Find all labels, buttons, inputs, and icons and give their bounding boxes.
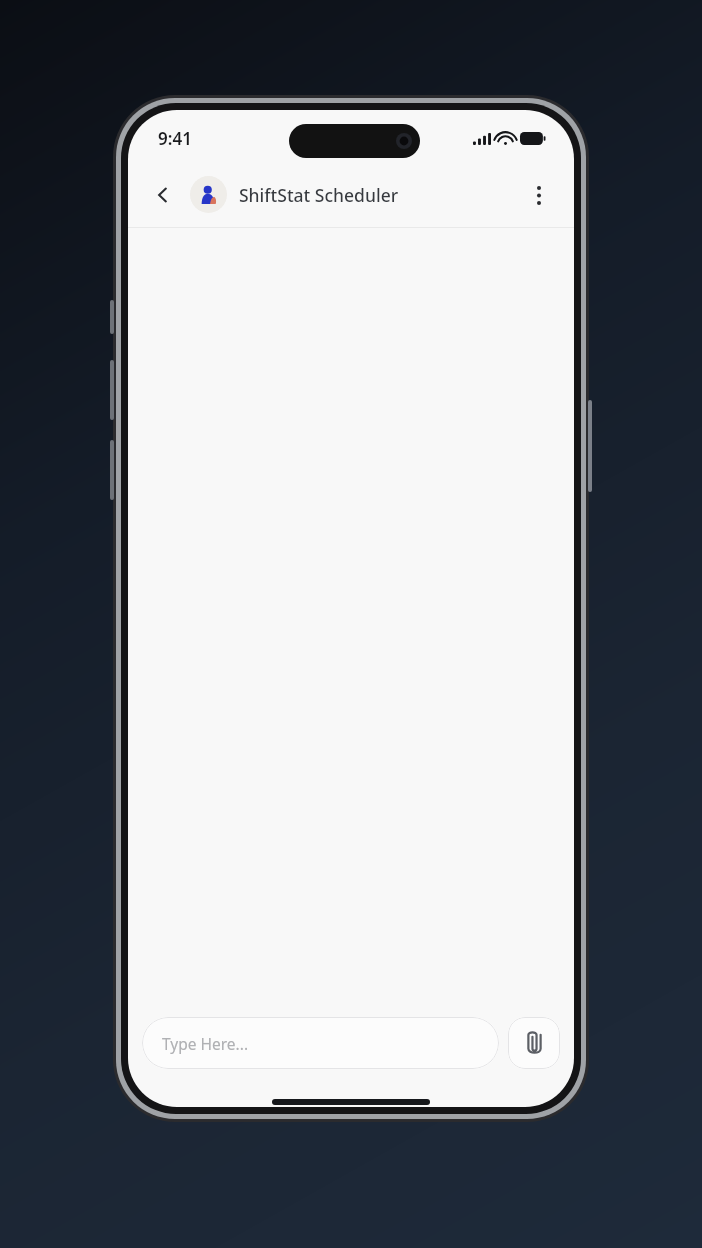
staticText: 9:41 — [158, 127, 192, 150]
button[interactable]: Attach file — [508, 1017, 560, 1069]
button[interactable]: More options — [522, 178, 556, 212]
staticText: ShiftStat Scheduler — [239, 183, 399, 207]
button[interactable]: Back — [146, 178, 180, 212]
staticText: Type Here... — [162, 1033, 249, 1054]
button[interactable]: Profile — [190, 176, 227, 213]
button[interactable]: Type Here... — [142, 1017, 499, 1069]
